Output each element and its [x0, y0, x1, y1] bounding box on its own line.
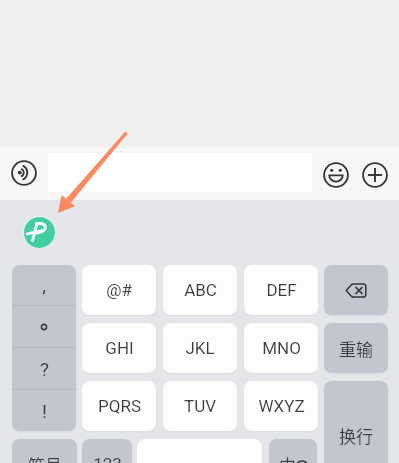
button[interactable]: 符号	[12, 439, 77, 463]
button[interactable]	[12, 306, 76, 347]
staticText: JKL	[185, 338, 215, 358]
button[interactable]: @#	[82, 265, 156, 315]
button[interactable]: Add	[362, 162, 388, 188]
button[interactable]: ?	[12, 348, 76, 389]
button[interactable]: DEF	[244, 265, 318, 315]
button[interactable]: TUV	[163, 381, 237, 431]
button[interactable]: JKL	[163, 323, 237, 373]
button[interactable]: Voice input	[11, 160, 37, 186]
staticText: 符号	[28, 452, 62, 463]
staticText: TUV	[184, 396, 216, 416]
button[interactable]: 重输	[324, 323, 388, 373]
button[interactable]: Text input	[48, 153, 312, 192]
staticText: !	[42, 400, 47, 422]
staticText: ,	[42, 274, 46, 296]
staticText: WXYZ	[258, 396, 305, 416]
button[interactable]: 123	[82, 439, 132, 463]
staticText: 换行	[339, 423, 373, 448]
staticText: PQRS	[98, 396, 141, 416]
staticText: MNO	[262, 338, 301, 358]
staticText: ?	[40, 358, 49, 380]
button[interactable]: WXYZ	[244, 381, 318, 431]
button[interactable]: !	[12, 390, 76, 431]
button[interactable]: ,	[12, 265, 76, 305]
button[interactable]: Input method logo	[24, 217, 55, 248]
button[interactable]: Chinese English switch	[269, 439, 317, 463]
staticText: GHI	[105, 338, 134, 358]
staticText: 重输	[339, 336, 373, 361]
staticText: ABC	[184, 280, 217, 300]
button[interactable]: Emoji	[323, 162, 349, 188]
button[interactable]: PQRS	[82, 381, 156, 431]
staticText: DEF	[266, 280, 297, 300]
button[interactable]: Delete	[324, 265, 388, 315]
button[interactable]: MNO	[244, 323, 318, 373]
button[interactable]: 换行	[324, 381, 388, 463]
button[interactable]: GHI	[82, 323, 156, 373]
staticText: 123	[93, 454, 122, 463]
button[interactable]: ABC	[163, 265, 237, 315]
staticText: @#	[106, 280, 132, 300]
staticText: 中	[279, 452, 296, 463]
